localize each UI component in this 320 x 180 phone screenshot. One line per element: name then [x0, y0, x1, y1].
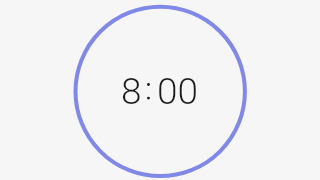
staticText: 8: [121, 70, 142, 113]
button[interactable]: Timer, 8 minutes remaining: [73, 3, 247, 177]
staticText: 00: [157, 70, 199, 113]
